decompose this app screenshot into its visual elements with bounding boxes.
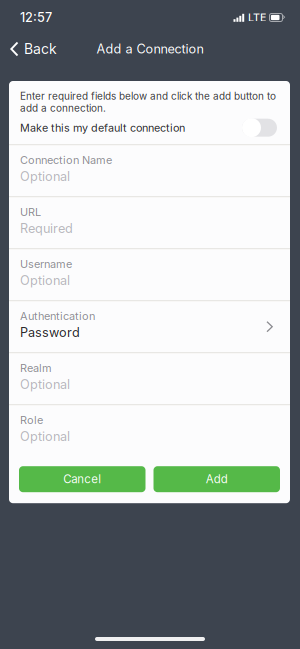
- staticText: Realm: [20, 361, 52, 375]
- staticText: Cancel: [63, 472, 101, 486]
- staticText: Optional: [20, 429, 70, 444]
- staticText: URL: [20, 205, 41, 219]
- staticText: Optional: [20, 273, 70, 288]
- staticText: Enter required fields below and click th…: [20, 90, 276, 114]
- button[interactable]: Cancel: [19, 466, 145, 492]
- staticText: Back: [24, 40, 57, 57]
- button[interactable]: Back: [0, 35, 67, 63]
- button[interactable]: Authentication: [9, 301, 290, 352]
- staticText: Authentication: [20, 309, 95, 323]
- staticText: Optional: [20, 377, 70, 392]
- staticText: Username: [20, 257, 72, 271]
- button[interactable]: Make this my default connection: [242, 118, 279, 137]
- staticText: Connection Name: [20, 153, 112, 167]
- staticText: LTE: [248, 11, 266, 24]
- staticText: Role: [20, 413, 43, 427]
- staticText: Add: [206, 472, 228, 486]
- staticText: Add a Connection: [96, 41, 203, 57]
- staticText: 12:57: [20, 10, 52, 25]
- staticText: Password: [20, 325, 80, 340]
- staticText: Make this my default connection: [20, 121, 185, 134]
- staticText: Optional: [20, 169, 70, 184]
- staticText: Required: [20, 221, 73, 236]
- button[interactable]: Add: [153, 466, 280, 492]
